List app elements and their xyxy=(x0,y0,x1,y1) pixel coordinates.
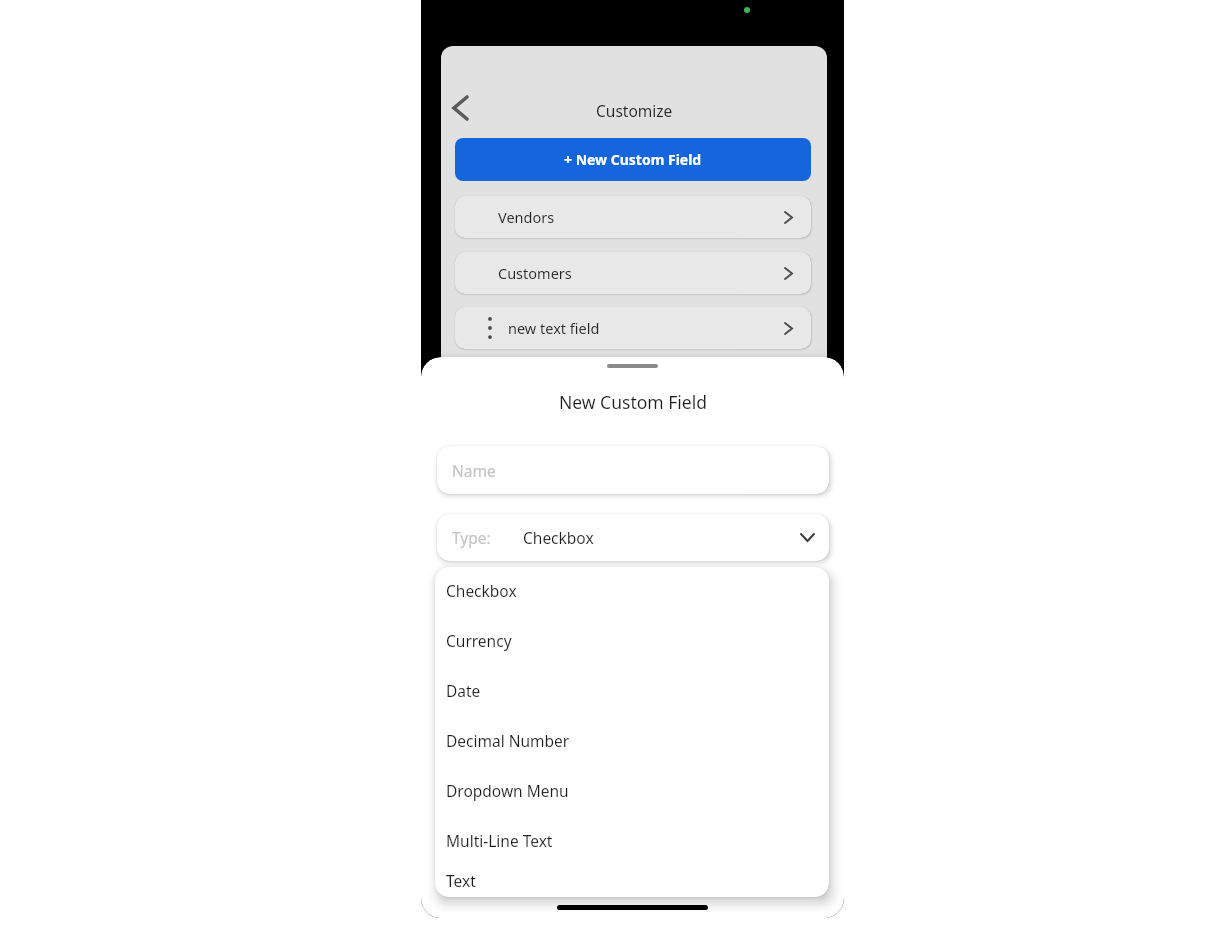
button[interactable]: Multi-Line Text xyxy=(435,815,829,865)
staticText: Decimal Number xyxy=(446,730,570,751)
staticText: + New Custom Field xyxy=(564,150,702,169)
button[interactable]: Date xyxy=(435,665,829,715)
staticText: Currency xyxy=(446,630,512,651)
button[interactable]: Decimal Number xyxy=(435,715,829,765)
staticText: Type: xyxy=(452,527,491,548)
button[interactable]: new text field xyxy=(455,307,811,349)
button[interactable]: Text xyxy=(435,865,829,895)
button[interactable]: Checkbox xyxy=(435,567,829,615)
staticText: new text field xyxy=(508,318,600,338)
staticText: Dropdown Menu xyxy=(446,780,569,801)
staticText: Checkbox xyxy=(446,580,517,601)
button[interactable]: Vendors xyxy=(455,196,811,238)
button[interactable]: Customers xyxy=(455,252,811,294)
staticText: Checkbox xyxy=(523,527,594,548)
staticText: Customers xyxy=(498,263,572,283)
staticText: New Custom Field xyxy=(559,390,707,414)
staticText: Text xyxy=(446,870,476,891)
staticText: Customize xyxy=(596,100,673,121)
staticText: Name xyxy=(452,460,496,481)
button[interactable]: Name xyxy=(437,446,829,494)
button[interactable]: Currency xyxy=(435,615,829,665)
staticText: Multi-Line Text xyxy=(446,830,553,851)
staticText: Vendors xyxy=(498,207,555,227)
button[interactable]: Type: xyxy=(437,514,829,561)
staticText: Date xyxy=(446,680,481,701)
button[interactable]: + New Custom Field xyxy=(455,138,811,181)
button[interactable]: Dropdown Menu xyxy=(435,765,829,815)
button[interactable] xyxy=(442,90,478,126)
